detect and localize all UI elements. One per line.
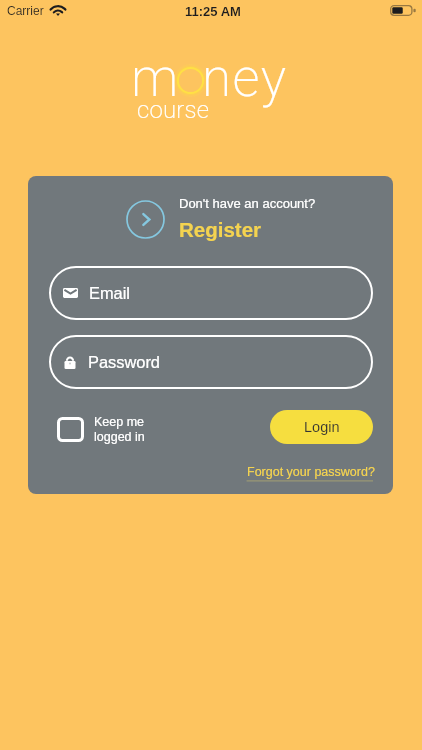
staticText: ney: [202, 47, 288, 109]
other: Register: [126, 200, 165, 239]
staticText: Carrier: [7, 4, 44, 17]
button[interactable]: Email: [49, 266, 373, 320]
staticText: Keep me: [94, 415, 145, 429]
staticText: course: [137, 96, 210, 124]
button[interactable]: Register: [126, 198, 316, 243]
staticText: 11:25 AM: [185, 4, 241, 19]
button[interactable]: Keep me: [57, 415, 145, 444]
staticText: logged in: [94, 430, 145, 444]
staticText: Don't have an account?: [179, 196, 316, 211]
button[interactable]: Forgot your password?: [244, 462, 374, 488]
staticText: Email: [89, 284, 130, 302]
staticText: Forgot your password?: [247, 465, 375, 479]
button[interactable]: Password: [49, 335, 373, 389]
staticText: Register: [179, 218, 262, 241]
staticText: Password: [88, 353, 160, 371]
button[interactable]: Login: [270, 410, 373, 444]
staticText: m: [131, 47, 179, 109]
staticText: Login: [304, 419, 340, 435]
